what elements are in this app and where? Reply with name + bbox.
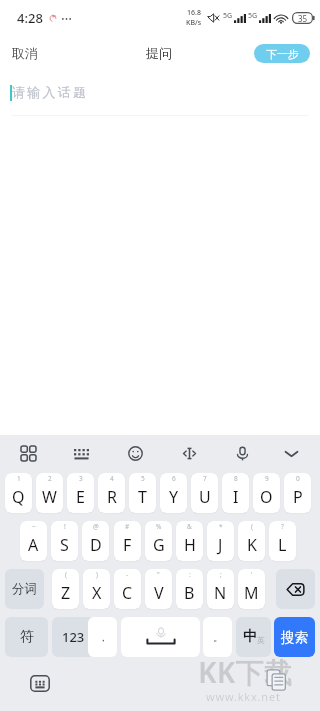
staticText: ) [96,570,98,579]
staticText: Q [12,486,25,508]
staticText: 8 [234,474,238,483]
staticText: ( [251,522,253,531]
staticText: L [278,534,287,556]
staticText: ~ [32,522,36,531]
staticText: R [107,486,117,508]
button[interactable]: Backspace [276,569,315,609]
button[interactable]: 中 [236,617,271,657]
staticText: E [76,486,85,508]
button[interactable]: 取消 [6,39,44,67]
button[interactable]: ' [238,569,265,609]
staticText: M [244,582,259,604]
staticText: @ [93,522,99,531]
staticText: 4:28 [17,9,43,27]
staticText: B [184,582,195,604]
button[interactable]: Voice input [227,438,257,468]
button[interactable]: 4 [98,473,125,513]
button[interactable]: Apps [13,438,43,468]
button[interactable]: " [145,569,172,609]
staticText: 3 [79,474,83,483]
button[interactable]: Switch keyboard [27,670,53,696]
button[interactable]: 6 [160,473,187,513]
staticText: www.kkx.net [206,689,281,704]
staticText: - [126,570,129,579]
staticText: 分词 [12,581,37,597]
button[interactable]: 3 [67,473,94,513]
button[interactable]: 。 [203,617,232,657]
staticText: ! [64,522,66,531]
staticText: 5G [248,11,258,21]
button[interactable]: # [114,521,141,561]
button[interactable]: Keyboard layout [66,438,96,468]
staticText: KB/s [186,18,202,28]
button[interactable]: @ [82,521,109,561]
staticText: I [233,486,239,508]
button[interactable]: & [176,521,203,561]
staticText: 2 [48,474,52,483]
button[interactable]: 9 [253,473,280,513]
button[interactable]: ; [207,569,234,609]
staticText: " [157,570,160,579]
staticText: O [260,486,273,508]
button[interactable]: ~ [20,521,47,561]
staticText: 符 [20,628,34,646]
staticText: 取消 [12,45,38,61]
button[interactable]: 8 [222,473,249,513]
button[interactable]: * [207,521,234,561]
button[interactable]: ? [269,521,296,561]
staticText: G [153,534,165,556]
staticText: 1 [17,474,21,483]
button[interactable]: ) [83,569,110,609]
staticText: A [28,534,39,556]
staticText: 0 [296,474,300,483]
staticText: K [247,534,257,556]
staticText: & [187,522,192,531]
staticText: * [219,522,223,531]
button[interactable]: 搜索 [274,617,315,657]
staticText: Y [169,486,179,508]
button[interactable]: ， [88,617,117,657]
staticText: 16.8 [187,8,201,18]
staticText: 5 [141,474,145,483]
button[interactable]: % [145,521,172,561]
button[interactable]: Cursor control [174,438,204,468]
staticText: ; [220,570,222,579]
button[interactable]: 0 [284,473,311,513]
staticText: X [92,582,102,604]
staticText: % [156,522,162,531]
staticText: 4 [110,474,114,483]
staticText: # [125,522,130,531]
button[interactable]: Emoji [120,438,150,468]
staticText: 。 [213,631,223,644]
staticText: N [214,582,227,604]
staticText: T [138,486,147,508]
button[interactable]: ( [238,521,265,561]
button[interactable]: 符 [5,617,48,657]
staticText: 9 [265,474,269,483]
button[interactable]: 下一步 [254,44,310,63]
button[interactable]: 1 [5,473,32,513]
staticText: 35 [298,13,308,24]
staticText: : [189,570,191,579]
staticText: ' [251,570,253,579]
staticText: F [123,534,132,556]
button[interactable]: Hide keyboard [276,438,306,468]
staticText: 中 [243,628,257,646]
button[interactable]: - [114,569,141,609]
staticText: S [60,534,69,556]
staticText: Z [61,582,71,604]
button[interactable]: 分词 [5,569,44,609]
staticText: P [293,486,303,508]
button[interactable]: 123 [52,617,95,657]
staticText: 6 [172,474,176,483]
button[interactable]: 2 [36,473,63,513]
staticText: W [42,486,57,508]
button[interactable]: 5 [129,473,156,513]
staticText: U [199,486,211,508]
staticText: 5G [223,11,233,21]
button[interactable]: : [176,569,203,609]
button[interactable]: Space [121,617,200,657]
button[interactable]: ! [51,521,78,561]
button[interactable]: ( [52,569,79,609]
button[interactable]: 7 [191,473,218,513]
